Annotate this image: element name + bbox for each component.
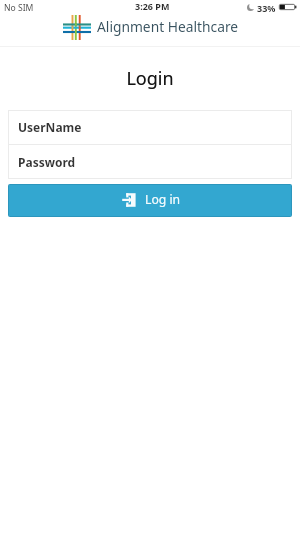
staticText: No SIM xyxy=(4,2,34,14)
staticText: Login xyxy=(0,66,300,91)
staticText: Log in xyxy=(145,191,181,208)
staticText: Login xyxy=(0,66,300,91)
staticText: UserName xyxy=(18,119,82,135)
staticText: 3:26 PM xyxy=(135,0,170,12)
staticText: Password xyxy=(18,154,76,170)
staticText: Alignment Healthcare xyxy=(97,17,239,36)
other: Log in xyxy=(122,193,136,207)
staticText: 33% xyxy=(257,2,276,14)
button[interactable]: Password xyxy=(8,145,292,179)
button[interactable]: UserName xyxy=(8,110,292,144)
button[interactable]: Log in xyxy=(9,185,291,216)
